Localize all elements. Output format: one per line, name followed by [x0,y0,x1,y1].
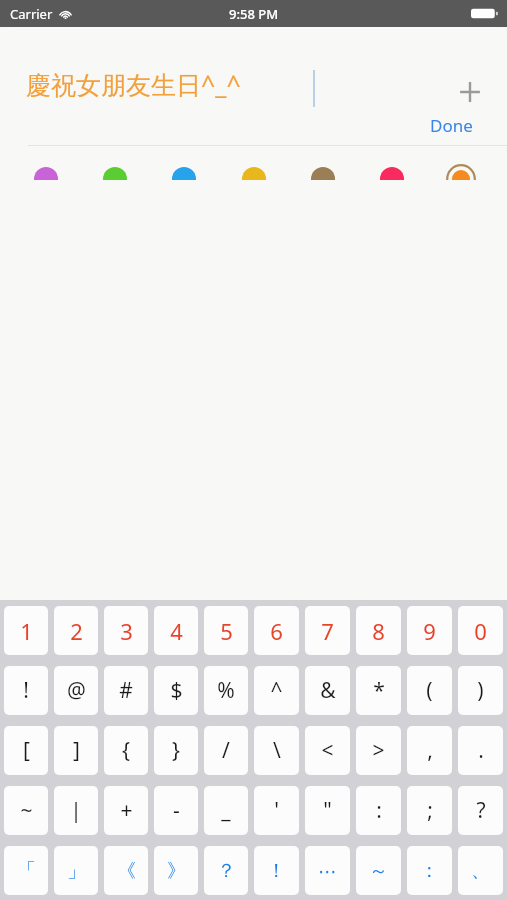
staticText: : [376,796,382,825]
staticText: # [119,676,133,705]
button[interactable]: ? [458,786,503,835]
button[interactable]: 慶祝女朋友生日^_^ [26,67,241,101]
button[interactable]: Done [430,114,473,137]
staticText: ⋯ [318,860,337,882]
staticText: / [222,736,230,765]
staticText: % [217,676,235,705]
staticText: 1 [20,616,33,646]
button[interactable]: ～ [356,846,401,895]
staticText: ) [477,676,484,705]
staticText: 6 [270,616,283,646]
staticText: 《 [117,859,136,883]
button[interactable]: 》 [154,846,198,895]
staticText: 、 [471,859,490,883]
button[interactable]: Add [450,72,490,112]
button[interactable]: 6 [254,606,299,655]
staticText: [ [23,736,30,765]
button[interactable]: { [104,726,148,775]
button[interactable]: ' [254,786,299,835]
button[interactable]: ) [458,666,503,715]
staticText: ？ [217,859,236,883]
button[interactable]: . [458,726,503,775]
button[interactable]: ] [54,726,98,775]
button[interactable]: > [356,726,401,775]
button[interactable]: | [54,786,98,835]
button[interactable]: : [356,786,401,835]
button[interactable]: $ [154,666,198,715]
staticText: \ [273,736,281,765]
button[interactable]: \ [254,726,299,775]
staticText: + [120,796,133,825]
button[interactable]: Color 6 [370,157,414,180]
button[interactable]: Color 4 [232,157,276,180]
staticText: 4 [170,616,183,646]
button[interactable]: 0 [458,606,503,655]
button[interactable]: ？ [204,846,248,895]
button[interactable]: % [204,666,248,715]
button[interactable]: 4 [154,606,198,655]
button[interactable]: * [356,666,401,715]
staticText: , [427,736,433,765]
staticText: Done [430,114,473,137]
button[interactable]: ： [407,846,452,895]
staticText: 「 [17,859,36,883]
staticText: $ [170,676,183,705]
staticText: ' [274,796,279,825]
button[interactable]: 8 [356,606,401,655]
button[interactable]: _ [204,786,248,835]
button[interactable]: ~ [4,786,48,835]
staticText: * [373,676,385,705]
button[interactable]: Color 5 [301,157,345,180]
staticText: 慶祝女朋友生日^_^ [26,67,241,101]
button[interactable]: 《 [104,846,148,895]
button[interactable]: - [154,786,198,835]
staticText: 8 [372,616,385,646]
staticText: " [323,796,332,825]
staticText: ^ [270,676,283,705]
staticText: ] [73,736,80,765]
button[interactable]: " [305,786,350,835]
button[interactable]: Color 7 [439,157,483,180]
button[interactable]: ^ [254,666,299,715]
button[interactable]: 9 [407,606,452,655]
button[interactable]: < [305,726,350,775]
staticText: ( [426,676,433,705]
button[interactable]: 「 [4,846,48,895]
staticText: 0 [474,616,487,646]
button[interactable]: 5 [204,606,248,655]
button[interactable]: Color 2 [93,157,137,180]
button[interactable]: 2 [54,606,98,655]
button[interactable]: @ [54,666,98,715]
button[interactable]: ! [4,666,48,715]
staticText: ： [420,859,439,883]
button[interactable]: 」 [54,846,98,895]
button[interactable]: 、 [458,846,503,895]
button[interactable]: ⋯ [305,846,350,895]
button[interactable]: 1 [4,606,48,655]
staticText: | [70,796,82,825]
button[interactable]: [ [4,726,48,775]
button[interactable]: / [204,726,248,775]
button[interactable]: ( [407,666,452,715]
button[interactable]: Color 1 [24,157,68,180]
staticText: ！ [267,859,286,883]
staticText: ? [476,796,486,825]
staticText: 》 [167,859,186,883]
staticText: & [320,676,336,705]
staticText: ; [427,796,433,825]
button[interactable]: } [154,726,198,775]
staticText: . [478,736,484,765]
staticText: { [122,736,130,765]
button[interactable]: 3 [104,606,148,655]
staticText: 」 [67,859,86,883]
button[interactable]: + [104,786,148,835]
button[interactable]: ！ [254,846,299,895]
button[interactable]: & [305,666,350,715]
button[interactable]: Color 3 [162,157,206,180]
staticText: < [321,736,334,765]
button[interactable]: ; [407,786,452,835]
button[interactable]: # [104,666,148,715]
staticText: ~ [20,796,33,825]
button[interactable]: , [407,726,452,775]
button[interactable]: 7 [305,606,350,655]
